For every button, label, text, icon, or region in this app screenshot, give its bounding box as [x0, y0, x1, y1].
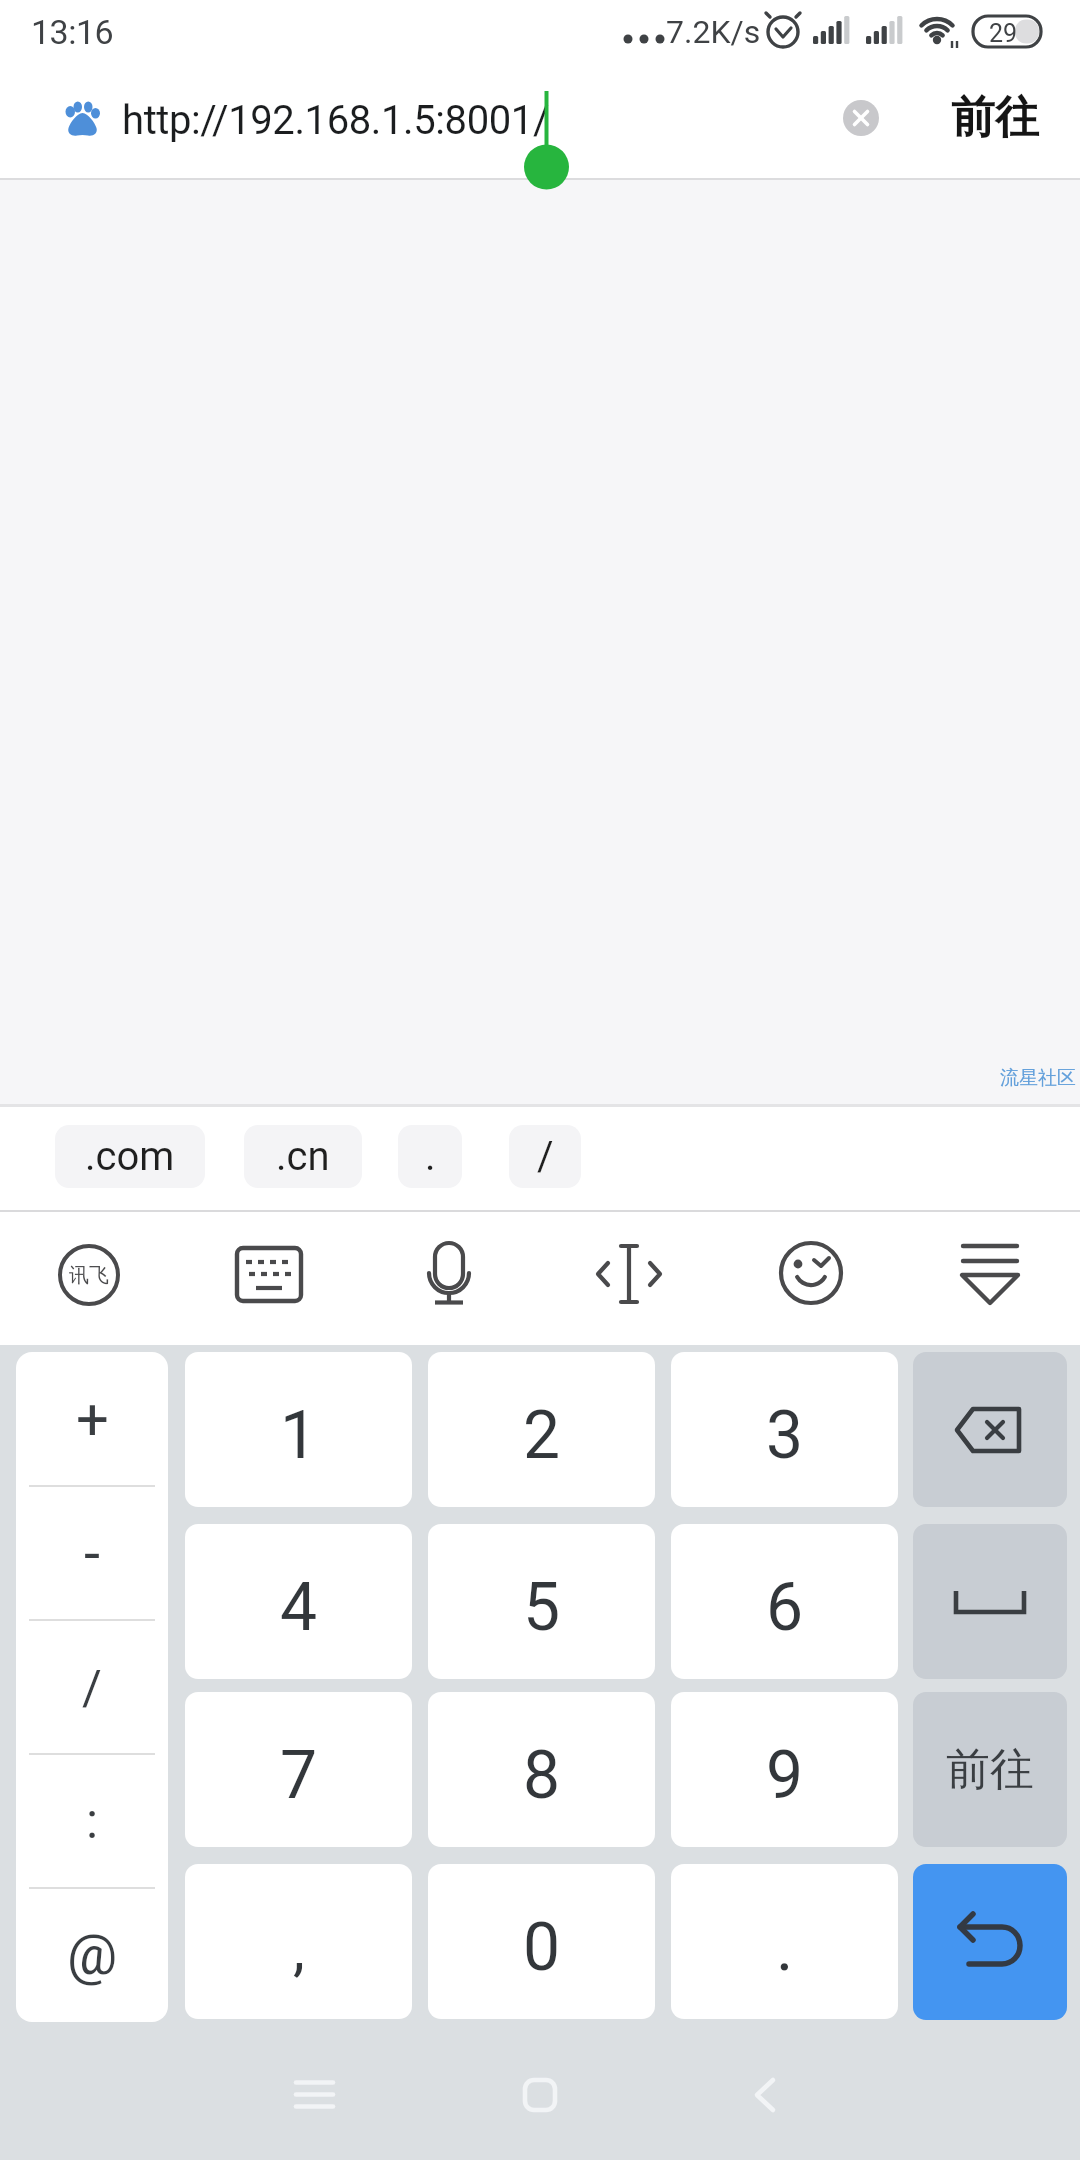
staticText: 4: [280, 1569, 318, 1646]
staticText: :: [86, 1792, 99, 1851]
button[interactable]: /: [509, 1125, 581, 1188]
button[interactable]: 7: [185, 1692, 412, 1847]
button[interactable]: :: [16, 1754, 168, 1888]
staticText: .cn: [276, 1133, 330, 1180]
staticText: 9: [766, 1737, 804, 1814]
button[interactable]: 6: [671, 1524, 898, 1679]
staticText: 0: [523, 1909, 561, 1986]
staticText: 5: [523, 1569, 561, 1646]
staticText: 29: [989, 19, 1018, 45]
button[interactable]: @: [16, 1888, 168, 2022]
button[interactable]: -: [16, 1486, 168, 1620]
staticText: .: [425, 1133, 436, 1180]
button[interactable]: 3: [671, 1352, 898, 1507]
button[interactable]: [505, 2068, 575, 2122]
button[interactable]: .: [671, 1864, 898, 2019]
button[interactable]: 0: [428, 1864, 655, 2019]
button[interactable]: .com: [55, 1125, 205, 1188]
button[interactable]: [955, 1238, 1025, 1310]
button[interactable]: 前往: [913, 1692, 1067, 1847]
staticText: 流星社区: [1000, 1066, 1076, 1090]
staticText: 7: [280, 1737, 318, 1814]
staticText: @: [67, 1922, 118, 1988]
button[interactable]: [427, 1240, 471, 1306]
button[interactable]: 1: [185, 1352, 412, 1507]
staticText: +: [76, 1385, 109, 1453]
button[interactable]: .cn: [244, 1125, 362, 1188]
staticText: 3: [766, 1397, 804, 1474]
button[interactable]: 前往: [940, 84, 1050, 150]
button[interactable]: [778, 1240, 844, 1306]
button[interactable]: [594, 1240, 664, 1308]
button[interactable]: 2: [428, 1352, 655, 1507]
staticText: 8: [523, 1737, 561, 1814]
button[interactable]: /: [16, 1620, 168, 1754]
staticText: 讯飞: [69, 1263, 109, 1288]
staticText: 2: [523, 1397, 561, 1474]
button[interactable]: [843, 100, 879, 136]
button[interactable]: [913, 1864, 1067, 2020]
button[interactable]: [735, 2068, 795, 2122]
staticText: 13:16: [31, 12, 114, 50]
button[interactable]: 8: [428, 1692, 655, 1847]
button[interactable]: [0, 64, 1080, 180]
staticText: ,: [293, 1913, 305, 1983]
staticText: 6: [766, 1569, 804, 1646]
button[interactable]: 4: [185, 1524, 412, 1679]
button[interactable]: +: [16, 1352, 168, 1486]
staticText: 1: [280, 1397, 318, 1474]
staticText: 7.2K/s: [666, 13, 761, 49]
button[interactable]: .: [398, 1125, 462, 1188]
button[interactable]: [234, 1240, 304, 1310]
button[interactable]: [280, 2070, 350, 2120]
staticText: .com: [85, 1133, 175, 1180]
staticText: 前往: [951, 90, 1039, 145]
staticText: /: [537, 1133, 554, 1180]
button[interactable]: 5: [428, 1524, 655, 1679]
button[interactable]: [913, 1524, 1067, 1679]
staticText: 前往: [946, 1742, 1034, 1797]
button[interactable]: [913, 1352, 1067, 1507]
staticText: http://192.168.1.5:8001/: [122, 97, 549, 144]
staticText: .: [776, 1909, 794, 1986]
button[interactable]: 讯飞: [55, 1241, 123, 1309]
button[interactable]: ,: [185, 1864, 412, 2019]
staticText: /: [82, 1659, 102, 1715]
staticText: -: [84, 1519, 101, 1587]
button[interactable]: 9: [671, 1692, 898, 1847]
